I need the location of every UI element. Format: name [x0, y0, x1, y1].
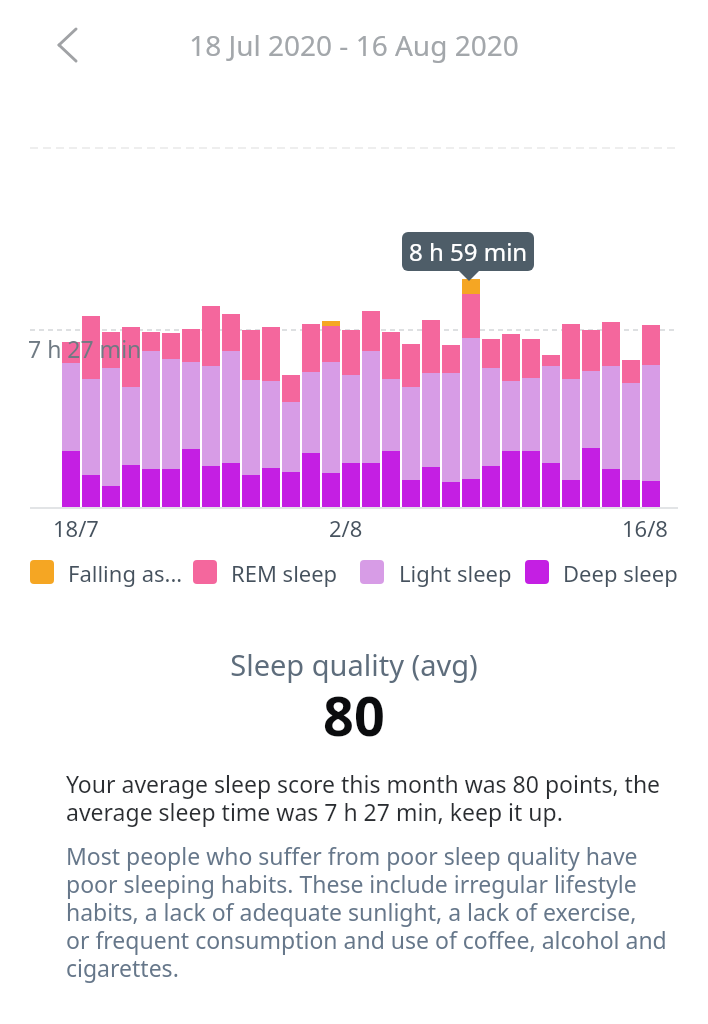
staticText: Light sleep [399, 558, 512, 588]
staticText: Most people who suffer from poor sleep q… [66, 840, 686, 984]
staticText: 8 h 59 min [409, 235, 528, 268]
staticText: 18 Jul 2020 - 16 Aug 2020 [0, 26, 708, 64]
staticText: Deep sleep [563, 558, 678, 588]
button[interactable] [40, 15, 90, 75]
staticText: Falling as... [68, 558, 183, 588]
staticText: Your average sleep score this month was … [66, 768, 666, 828]
staticText: REM sleep [231, 558, 338, 588]
staticText: 2/8 [329, 513, 363, 539]
staticText: Sleep quality (avg) [0, 645, 708, 684]
staticText: 18/7 [53, 513, 99, 539]
staticText: 7 h 27 min [28, 333, 142, 364]
staticText: 80 [0, 678, 708, 752]
staticText: 16/8 [622, 513, 668, 539]
